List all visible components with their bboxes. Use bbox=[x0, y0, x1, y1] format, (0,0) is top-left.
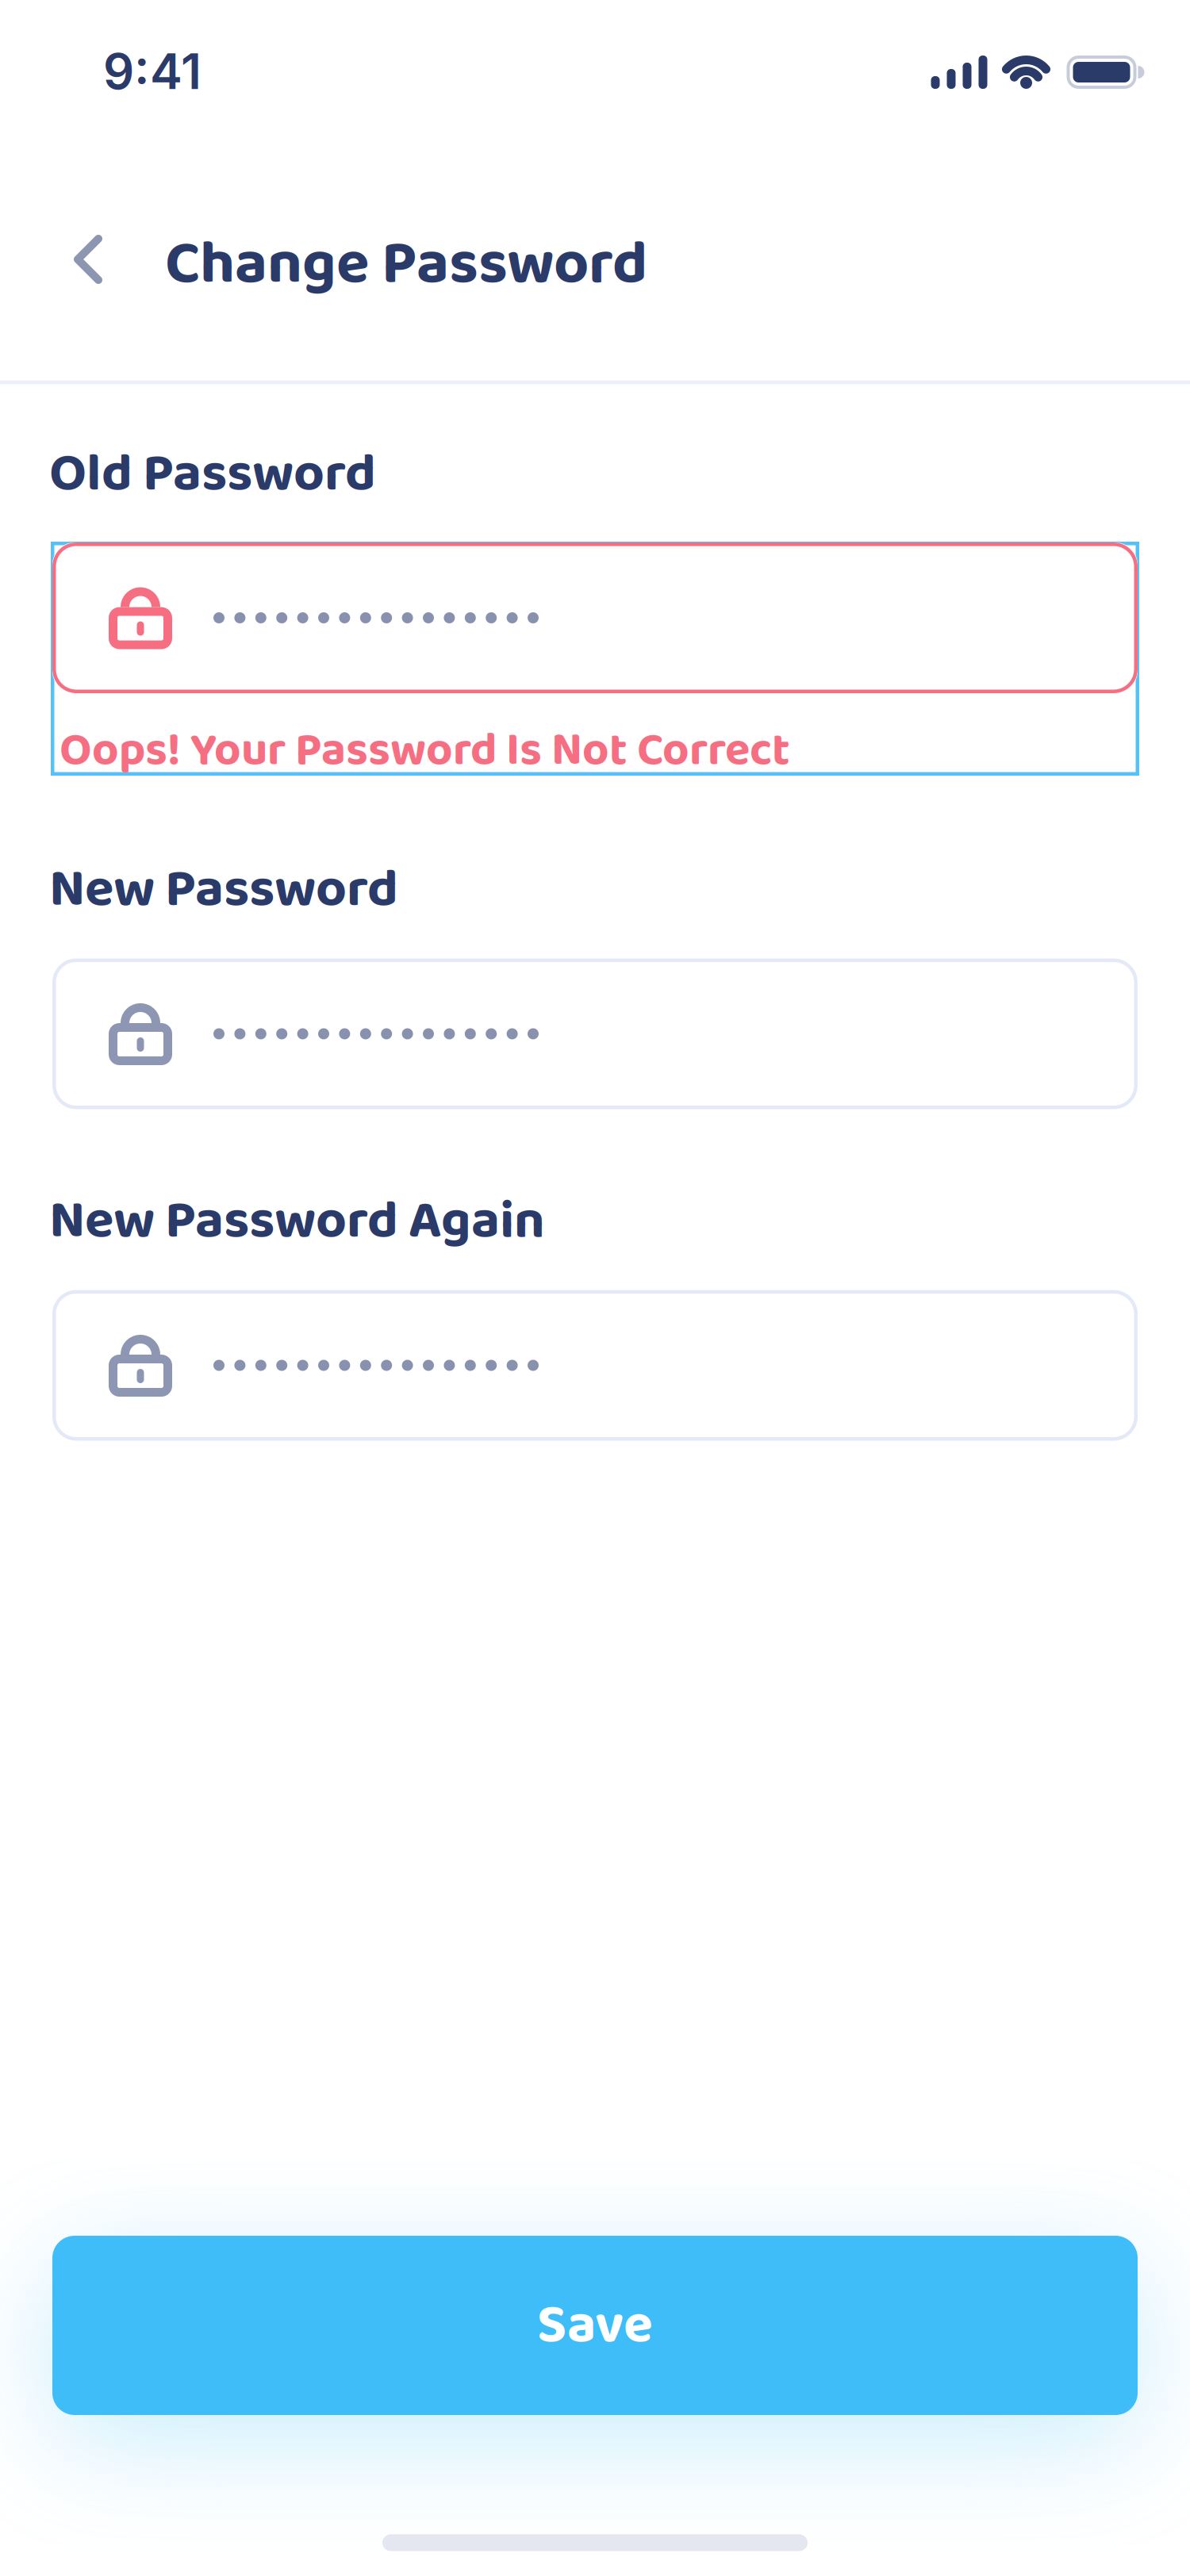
staticText: 9:41 bbox=[103, 42, 202, 101]
button[interactable]: New Password Again bbox=[52, 1290, 1138, 1441]
button[interactable]: New Password bbox=[52, 958, 1138, 1109]
staticText: Change Password bbox=[165, 216, 647, 314]
button[interactable]: Old Password bbox=[52, 542, 1138, 693]
staticText: New Password Again bbox=[49, 1179, 545, 1264]
button[interactable]: Back bbox=[55, 216, 121, 303]
staticText: New Password bbox=[49, 847, 398, 933]
staticText: Save bbox=[537, 2283, 653, 2369]
staticText: Oops! Your Password Is Not Correct bbox=[59, 714, 790, 788]
button[interactable]: Save bbox=[52, 2236, 1138, 2415]
staticText: Old Password bbox=[49, 432, 376, 517]
